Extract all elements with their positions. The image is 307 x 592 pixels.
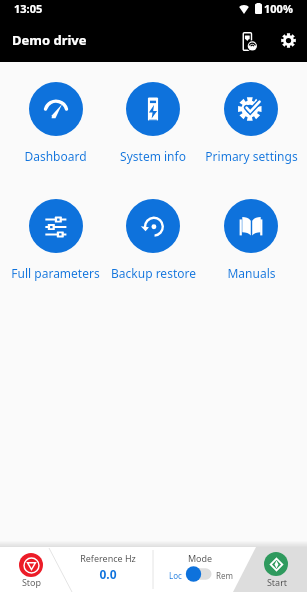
staticText: Demo drive [12, 31, 87, 49]
button[interactable]: Device connection [229, 25, 263, 59]
button[interactable]: Full parameters [7, 199, 104, 281]
staticText: 100% [264, 1, 293, 16]
staticText: Start [252, 576, 302, 588]
button[interactable]: Primary settings [202, 82, 300, 164]
staticText: Loc [169, 570, 182, 581]
staticText: Rem [216, 570, 233, 581]
staticText: Full parameters [11, 265, 100, 281]
staticText: 13:05 [14, 1, 43, 16]
staticText: Manuals [227, 265, 276, 281]
staticText: System info [120, 148, 186, 164]
staticText: Mode [154, 552, 246, 564]
button[interactable]: Backup restore [104, 199, 202, 281]
button[interactable]: Dashboard [7, 82, 104, 164]
staticText: Dashboard [24, 148, 87, 164]
button[interactable]: Manuals [202, 199, 300, 281]
button[interactable]: Settings [271, 25, 305, 59]
staticText: 0.0 [62, 566, 154, 582]
button[interactable]: Start [251, 547, 307, 592]
staticText: Reference Hz [62, 552, 154, 564]
staticText: Backup restore [111, 265, 196, 281]
button[interactable]: System info [104, 82, 202, 164]
button[interactable]: Stop [0, 547, 49, 592]
staticText: Stop [7, 576, 56, 588]
button[interactable]: Mode switch [182, 566, 208, 582]
staticText: Primary settings [205, 148, 298, 164]
